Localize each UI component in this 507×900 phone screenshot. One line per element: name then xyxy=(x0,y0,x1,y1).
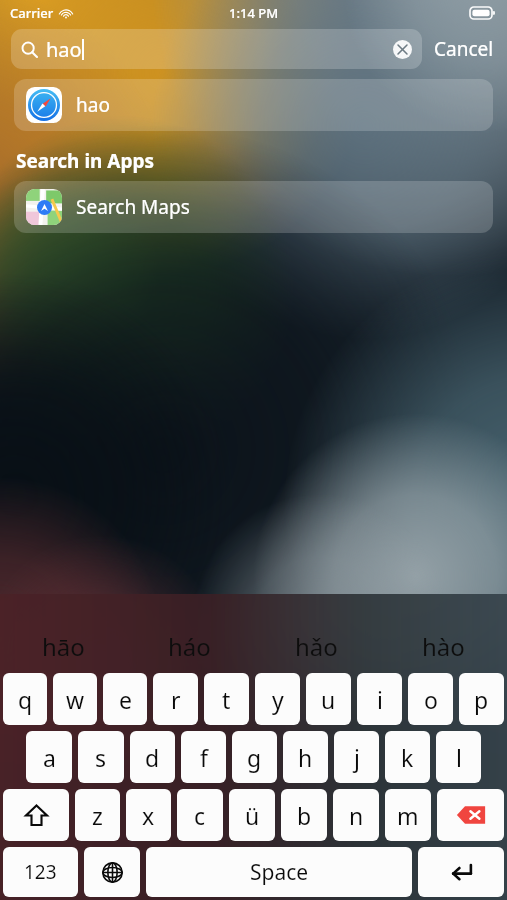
button[interactable]: hǎo xyxy=(253,623,380,670)
button[interactable]: x xyxy=(126,789,171,841)
staticText: x xyxy=(142,800,155,831)
staticText: a xyxy=(43,742,56,773)
button[interactable]: o xyxy=(408,673,453,725)
staticText: s xyxy=(95,742,107,773)
staticText: hao xyxy=(46,36,82,63)
button[interactable]: n xyxy=(333,789,379,841)
button[interactable]: hào xyxy=(380,623,507,670)
staticText: n xyxy=(349,800,364,831)
button[interactable]: t xyxy=(204,673,249,725)
staticText: d xyxy=(145,742,160,773)
staticText: j xyxy=(354,742,360,773)
button[interactable]: 123 xyxy=(3,847,78,897)
button[interactable]: h xyxy=(283,731,328,783)
staticText: hǎo xyxy=(295,630,338,663)
button[interactable]: Space xyxy=(146,847,412,897)
button[interactable]: Cancel xyxy=(432,30,496,68)
button[interactable]: Return xyxy=(418,847,504,897)
button[interactable]: m xyxy=(385,789,431,841)
staticText: 1:14 PM xyxy=(229,4,279,22)
staticText: e xyxy=(119,684,132,715)
button[interactable]: Next keyboard xyxy=(84,847,140,897)
button[interactable]: hāo xyxy=(0,623,126,670)
staticText: hāo xyxy=(42,630,85,663)
button[interactable]: i xyxy=(357,673,402,725)
button[interactable]: j xyxy=(334,731,379,783)
staticText: ü xyxy=(245,800,260,831)
staticText: p xyxy=(474,684,489,715)
button[interactable]: Shift xyxy=(3,789,69,841)
button[interactable]: c xyxy=(177,789,223,841)
button[interactable]: Delete xyxy=(437,789,504,841)
button[interactable]: d xyxy=(130,731,175,783)
button[interactable]: háo xyxy=(126,623,253,670)
staticText: q xyxy=(18,684,33,715)
button[interactable]: e xyxy=(103,673,147,725)
button[interactable]: p xyxy=(459,673,504,725)
button[interactable]: z xyxy=(75,789,120,841)
staticText: hao xyxy=(76,92,110,118)
staticText: h xyxy=(298,742,313,773)
button[interactable]: Clear text xyxy=(393,40,412,59)
staticText: c xyxy=(194,800,206,831)
staticText: i xyxy=(377,684,383,715)
staticText: t xyxy=(222,684,231,715)
staticText: b xyxy=(297,800,312,831)
button[interactable]: hao xyxy=(14,79,493,131)
staticText: o xyxy=(424,684,438,715)
staticText: 123 xyxy=(24,859,57,885)
staticText: z xyxy=(92,800,103,831)
staticText: Space xyxy=(250,858,309,887)
button[interactable]: Search Maps xyxy=(14,181,493,233)
staticText: w xyxy=(66,684,85,715)
button[interactable]: q xyxy=(3,673,47,725)
button[interactable]: ü xyxy=(229,789,275,841)
staticText: hào xyxy=(422,630,465,663)
staticText: u xyxy=(321,684,336,715)
button[interactable]: u xyxy=(306,673,351,725)
button[interactable]: f xyxy=(181,731,226,783)
button[interactable]: l xyxy=(436,731,481,783)
button[interactable]: s xyxy=(78,731,124,783)
button[interactable]: k xyxy=(385,731,430,783)
staticText: Search Maps xyxy=(76,194,190,220)
button[interactable]: r xyxy=(153,673,198,725)
staticText: y xyxy=(272,684,284,715)
staticText: háo xyxy=(168,630,211,663)
button[interactable]: y xyxy=(255,673,300,725)
staticText: g xyxy=(247,742,262,773)
staticText: Carrier xyxy=(10,4,54,22)
button[interactable]: b xyxy=(281,789,327,841)
button[interactable]: w xyxy=(53,673,97,725)
button[interactable]: g xyxy=(232,731,277,783)
button[interactable]: a xyxy=(26,731,72,783)
staticText: k xyxy=(401,742,414,773)
staticText: f xyxy=(200,742,208,773)
staticText: m xyxy=(397,800,419,831)
staticText: r xyxy=(171,684,181,715)
staticText: l xyxy=(456,742,462,773)
staticText: Cancel xyxy=(434,36,494,62)
button[interactable]: hao xyxy=(11,29,422,69)
staticText: Search in Apps xyxy=(16,148,155,174)
